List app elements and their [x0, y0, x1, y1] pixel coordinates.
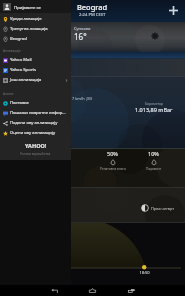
button[interactable]: Тренутна локација	[0, 24, 71, 34]
button[interactable]: Back	[46, 285, 62, 296]
staticText: Падавине	[146, 167, 162, 171]
staticText: Уреди локације	[10, 16, 42, 22]
staticText: 2:24 PM CEST	[79, 12, 106, 18]
button[interactable]: Поставке	[0, 98, 71, 108]
button[interactable]: Оцени ову апликацију	[0, 128, 71, 138]
staticText: Прва четврт	[151, 206, 175, 211]
staticText: Услови коришћења	[20, 152, 51, 156]
staticText: Поставке	[10, 100, 29, 106]
staticText: Барометар	[145, 101, 164, 106]
staticText: Тренутна локација	[10, 26, 48, 32]
button[interactable]: 50%	[92, 150, 133, 171]
staticText: 7 km/h ЈЗЗ	[72, 96, 92, 101]
staticText: Beograd	[10, 36, 27, 42]
button[interactable]: Beograd	[0, 34, 71, 44]
button[interactable]: Уреди локације	[0, 14, 71, 24]
staticText: Пријавите се	[14, 4, 41, 10]
button[interactable]: Пошаљи повратне информ…	[0, 108, 71, 118]
button[interactable]: Још апликација	[0, 75, 71, 85]
staticText: Подели ову апликацију	[10, 120, 58, 126]
staticText: Алатке	[3, 92, 14, 96]
staticText: Сунчано	[74, 26, 91, 31]
button[interactable]: 10%	[133, 150, 174, 171]
staticText: Yahoo Mail	[10, 57, 32, 63]
staticText: Beograd	[77, 2, 108, 12]
staticText: 10%	[148, 150, 159, 157]
staticText: Још апликација	[10, 77, 42, 83]
button[interactable]: Recents	[123, 285, 139, 296]
staticText: Апликације	[3, 49, 21, 53]
staticText: 16°	[74, 31, 87, 42]
staticText: 1.013,89 mBar	[135, 106, 173, 113]
button[interactable]: Yahoo Mail	[0, 55, 71, 65]
button[interactable]: Yahoo Sports	[0, 65, 71, 75]
staticText: Релативна влага	[100, 167, 126, 171]
staticText: Пошаљи повратне информ…	[10, 110, 68, 116]
staticText: YAHOO!	[25, 142, 47, 149]
staticText: Оцени ову апликацију	[10, 130, 56, 136]
button[interactable]: Подели ову апликацију	[0, 118, 71, 128]
staticText: 18:50	[124, 270, 165, 275]
staticText: 50%	[107, 150, 118, 157]
button[interactable]: Прва четврт	[141, 204, 175, 212]
button[interactable]: Home	[84, 285, 100, 296]
staticText: Yahoo Sports	[10, 67, 36, 73]
button[interactable]: Add location	[167, 4, 180, 17]
button[interactable]: Пријавите се	[0, 0, 71, 13]
